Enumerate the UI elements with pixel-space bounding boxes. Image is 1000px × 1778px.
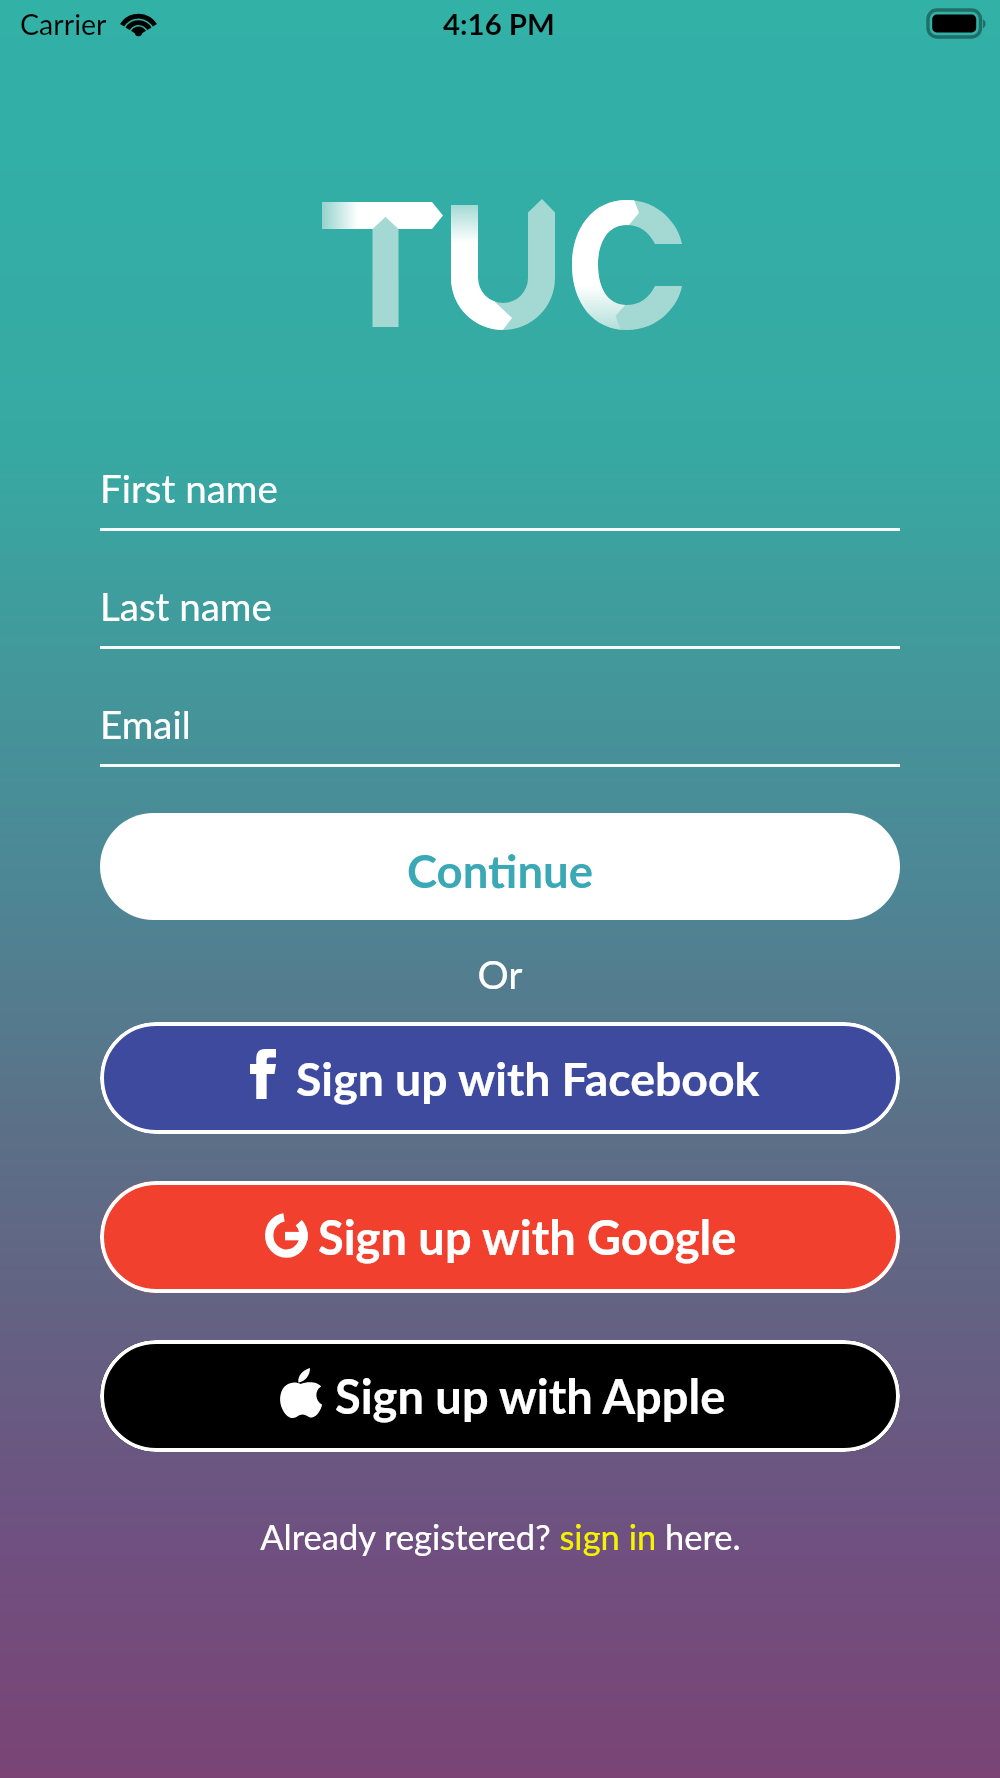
- button[interactable]: First name: [100, 465, 900, 531]
- button[interactable]: Sign up with Google: [100, 1181, 900, 1293]
- staticText: Carrier: [20, 7, 107, 41]
- staticText: First name: [100, 465, 278, 511]
- button[interactable]: Sign up with Facebook: [100, 1022, 900, 1134]
- other: Battery full: [928, 10, 987, 38]
- staticText: Email: [100, 701, 191, 747]
- staticText: Sign up with Apple: [335, 1368, 726, 1424]
- other: Wi-Fi signal: [119, 11, 158, 36]
- button[interactable]: Sign up with Apple: [100, 1340, 900, 1452]
- button[interactable]: Already registered? sign in here.: [260, 1516, 741, 1557]
- button[interactable]: Email: [100, 701, 900, 767]
- staticText: Continue: [407, 843, 594, 898]
- button[interactable]: Continue: [100, 813, 900, 920]
- staticText: 4:16 PM: [443, 6, 555, 41]
- staticText: Sign up with Facebook: [296, 1050, 760, 1106]
- staticText: Sign up with Google: [318, 1209, 737, 1265]
- staticText: Or: [0, 951, 1000, 998]
- staticText: Last name: [100, 583, 272, 629]
- button[interactable]: Last name: [100, 583, 900, 649]
